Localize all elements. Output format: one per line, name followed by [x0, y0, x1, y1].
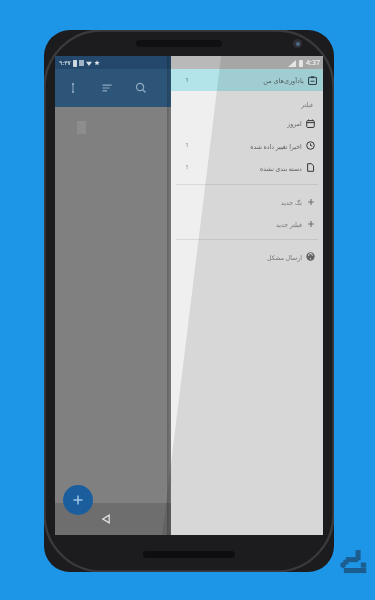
- button[interactable]: ارسال مشکل: [171, 245, 323, 267]
- staticText: امروز: [287, 120, 302, 127]
- staticText: تگ جدید: [281, 198, 302, 206]
- button[interactable]: تگ جدید: [171, 190, 323, 212]
- button[interactable]: امروز: [171, 112, 323, 134]
- button[interactable]: More options: [63, 78, 83, 98]
- staticText: یادآوری‌های من: [263, 76, 304, 85]
- button[interactable]: فیلتر جدید: [171, 212, 323, 234]
- button[interactable]: Sort: [97, 78, 117, 98]
- button[interactable]: Add: [63, 485, 93, 515]
- staticText: اخیرا تغییر داده شده: [250, 142, 302, 150]
- staticText: 1: [185, 76, 189, 84]
- staticText: فیلتر: [301, 101, 313, 108]
- button[interactable]: اخیرا تغییر داده شده: [171, 134, 323, 156]
- staticText: فیلتر جدید: [276, 220, 302, 228]
- staticText: دسته بندی نشده: [260, 164, 302, 172]
- button[interactable]: Search: [131, 78, 151, 98]
- staticText: 1: [185, 163, 189, 171]
- staticText: ۹:۳۷: [59, 59, 71, 67]
- button[interactable]: دسته بندی نشده: [171, 156, 323, 178]
- staticText: 1: [185, 141, 189, 149]
- staticText: 4:37: [306, 58, 320, 68]
- staticText: ارسال مشکل: [267, 253, 302, 261]
- button[interactable]: Back: [93, 506, 119, 532]
- button[interactable]: یادآوری‌های من: [171, 69, 323, 91]
